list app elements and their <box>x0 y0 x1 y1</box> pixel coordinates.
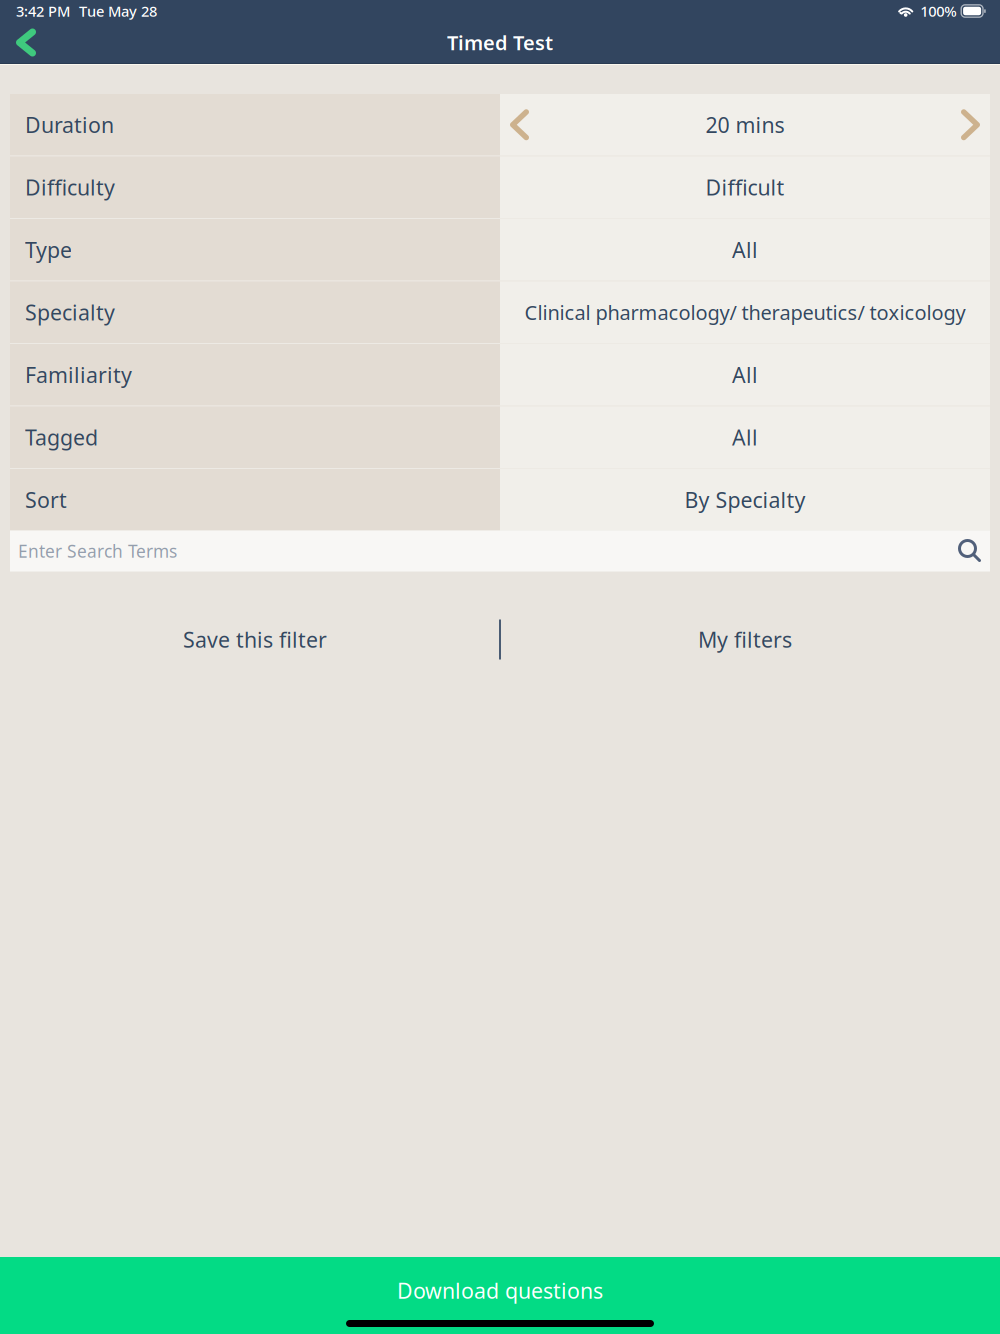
button[interactable]: Specialty <box>10 281 990 343</box>
staticText: Tue May 28 <box>79 1 157 21</box>
staticText: All <box>732 361 758 389</box>
staticText: Enter Search Terms <box>18 539 177 562</box>
button[interactable]: Save this filter <box>10 595 500 683</box>
staticText: Download questions <box>397 1276 603 1305</box>
staticText: All <box>732 236 758 264</box>
button[interactable]: Difficulty <box>10 156 990 218</box>
staticText: Difficulty <box>25 173 115 201</box>
staticText: Sort <box>25 486 67 514</box>
staticText: My filters <box>698 625 792 654</box>
staticText: Save this filter <box>183 625 327 654</box>
staticText: Type <box>25 236 72 264</box>
button[interactable]: My filters <box>500 595 990 683</box>
staticText: 100% <box>920 1 956 21</box>
button[interactable]: Familiarity <box>10 344 990 405</box>
staticText: Specialty <box>25 298 115 326</box>
staticText: Difficult <box>705 173 784 201</box>
staticText: Clinical pharmacology/ therapeutics/ tox… <box>524 299 965 326</box>
button[interactable]: Type <box>10 219 990 280</box>
staticText: By Specialty <box>684 486 805 514</box>
button[interactable]: Sort <box>10 469 990 530</box>
staticText: All <box>732 423 758 451</box>
staticText: Tagged <box>25 423 98 451</box>
button[interactable]: Back <box>0 21 50 63</box>
staticText: 3:42 PM <box>16 1 70 21</box>
staticText: Duration <box>25 111 114 139</box>
button[interactable]: Duration <box>10 94 990 155</box>
staticText: 20 mins <box>705 111 784 139</box>
staticText: Timed Test <box>447 29 553 56</box>
button[interactable]: Enter Search Terms <box>10 530 990 571</box>
button[interactable]: Tagged <box>10 406 990 468</box>
staticText: Familiarity <box>25 361 132 389</box>
button[interactable]: Download questions <box>0 1257 1000 1334</box>
